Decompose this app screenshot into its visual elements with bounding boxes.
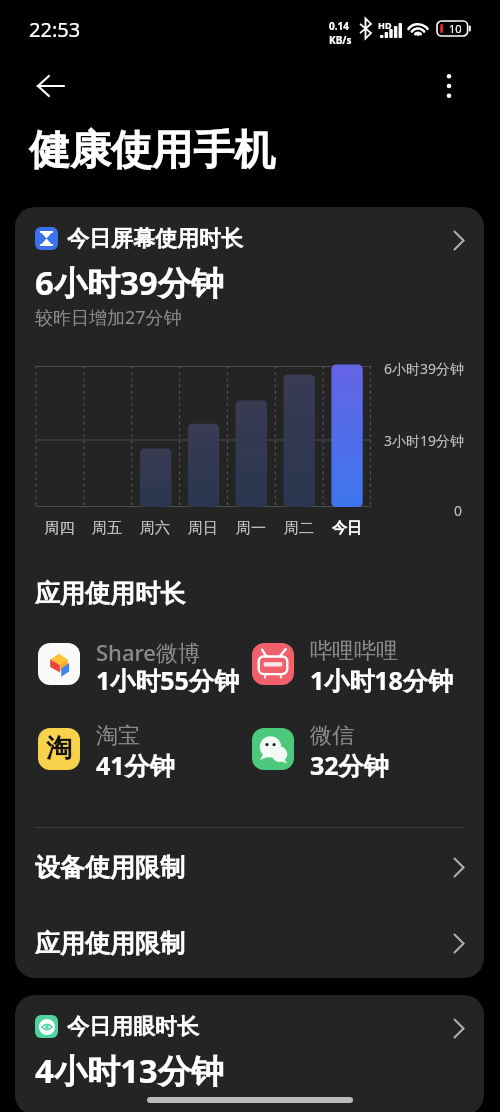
staticText: 4小时13分钟: [35, 1048, 224, 1093]
staticText: 周六: [131, 519, 179, 538]
button[interactable]: 设备使用限制: [15, 831, 484, 903]
staticText: 0.14: [329, 19, 349, 33]
staticText: 6小时39分钟: [35, 260, 224, 305]
staticText: 周二: [275, 519, 323, 538]
staticText: 周五: [83, 519, 131, 538]
staticText: 应用使用时长: [35, 578, 185, 609]
staticText: 今日用眼时长: [67, 1013, 199, 1041]
staticText: 周日: [179, 519, 227, 538]
staticText: 微信: [310, 722, 354, 750]
staticText: 22:53: [29, 16, 81, 43]
button[interactable]: Share微博: [38, 639, 252, 689]
button[interactable]: 淘: [38, 724, 252, 774]
staticText: 41分钟: [96, 748, 175, 782]
staticText: 淘宝: [96, 722, 140, 750]
staticText: 1小时55分钟: [96, 663, 239, 697]
button[interactable]: 今日屏幕使用时长: [15, 219, 484, 263]
button[interactable]: Back: [26, 62, 74, 110]
staticText: Share微博: [96, 637, 200, 667]
button[interactable]: More options: [427, 64, 471, 108]
staticText: 哔哩哔哩: [310, 637, 398, 665]
staticText: 周四: [36, 519, 83, 538]
staticText: HD: [378, 19, 392, 31]
staticText: 周一: [227, 519, 275, 538]
button[interactable]: 微信: [252, 724, 466, 774]
staticText: 今日: [323, 519, 371, 538]
staticText: 1小时18分钟: [310, 663, 453, 697]
staticText: 32分钟: [310, 748, 389, 782]
staticText: 0: [454, 501, 463, 520]
staticText: 今日屏幕使用时长: [67, 225, 243, 253]
staticText: 6小时39分钟: [384, 359, 465, 378]
staticText: 设备使用限制: [35, 852, 185, 883]
staticText: 较昨日增加27分钟: [35, 305, 182, 330]
staticText: 应用使用限制: [35, 928, 185, 959]
staticText: 10: [449, 21, 462, 36]
button[interactable]: 哔哩哔哩: [252, 639, 466, 689]
staticText: 淘: [46, 732, 72, 765]
staticText: 健康使用手机: [29, 125, 275, 177]
button[interactable]: 今日用眼时长: [15, 1007, 484, 1051]
button[interactable]: 应用使用限制: [15, 907, 484, 978]
staticText: 3小时19分钟: [384, 431, 465, 450]
staticText: KB/s: [329, 33, 352, 47]
